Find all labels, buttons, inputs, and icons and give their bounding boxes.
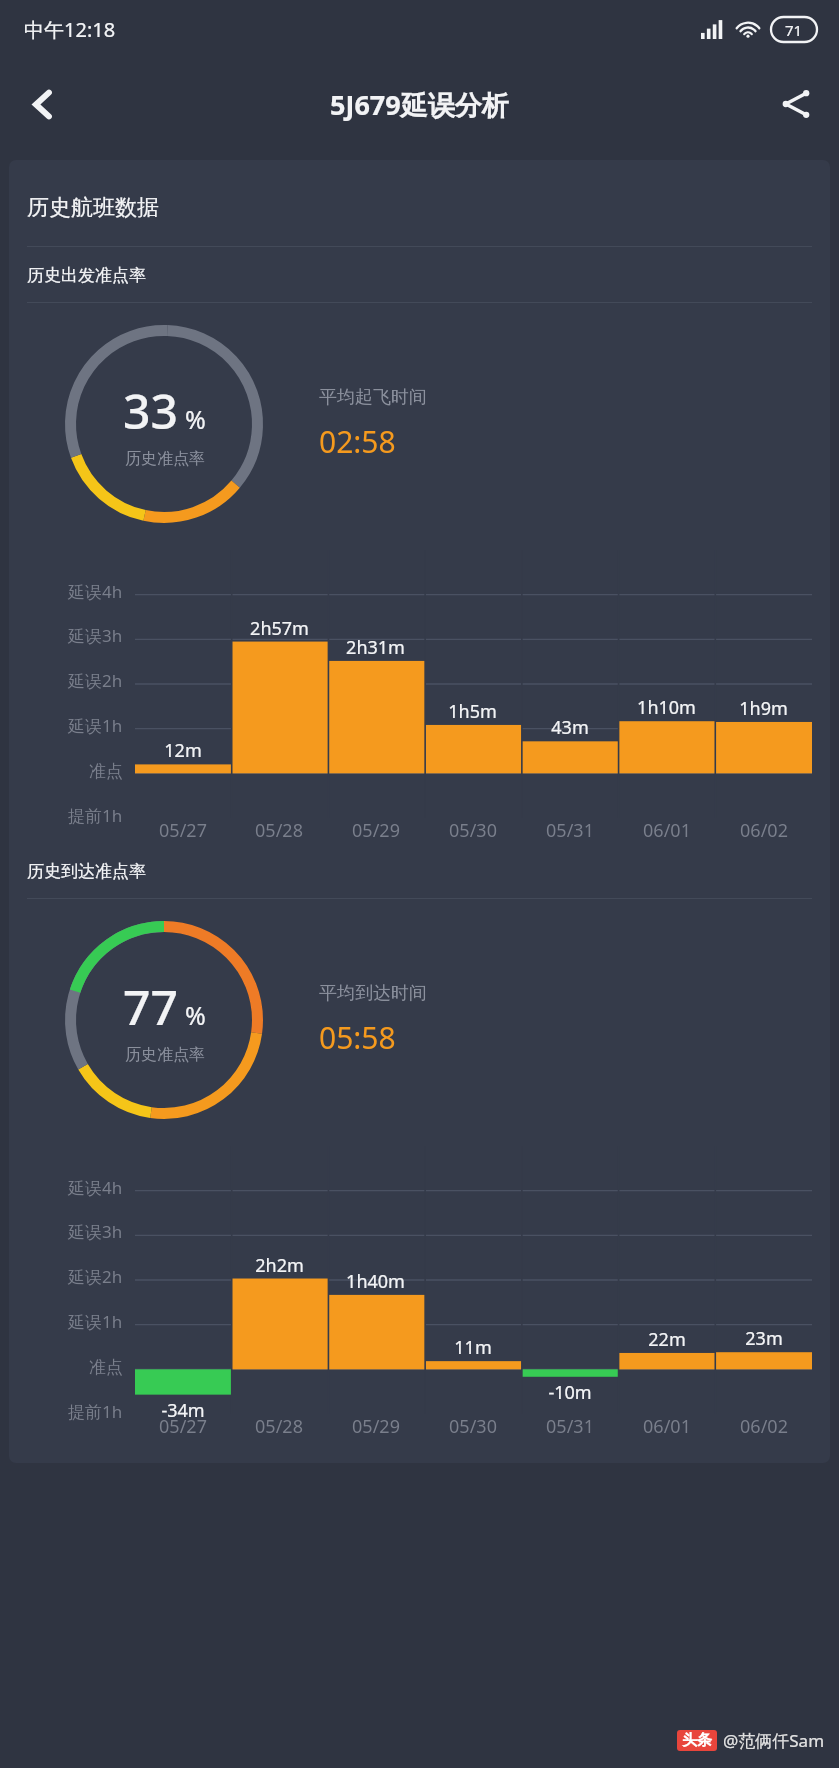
staticText: 1h9m [739, 696, 788, 721]
staticText: 延误1h [68, 714, 123, 737]
staticText: 77 [123, 974, 178, 1039]
staticText: 1h40m [346, 1269, 405, 1294]
staticText: 43m [551, 715, 589, 740]
staticText: 71 [785, 20, 803, 40]
staticText: 延误3h [68, 624, 123, 647]
staticText: 延误3h [68, 1220, 123, 1243]
staticText: 延误4h [68, 580, 123, 603]
staticText: 05/29 [352, 1414, 400, 1439]
staticText: % [185, 998, 206, 1032]
staticText: 历史准点率 [125, 449, 205, 469]
staticText: 1h10m [637, 695, 696, 720]
button[interactable]: Back [14, 75, 72, 133]
staticText: 05/27 [159, 818, 207, 843]
staticText: 平均到达时间 [319, 982, 427, 1005]
staticText: 02:58 [319, 421, 396, 462]
staticText: 05/27 [159, 1414, 207, 1439]
staticText: 延误2h [68, 1265, 123, 1288]
staticText: 23m [745, 1326, 783, 1351]
staticText: 05/30 [449, 818, 497, 843]
staticText: 1h5m [448, 699, 497, 724]
staticText: 12m [164, 738, 202, 763]
staticText: 05/30 [449, 1414, 497, 1439]
staticText: 延误1h [68, 1310, 123, 1333]
button[interactable]: Share [767, 75, 825, 133]
staticText: 06/01 [643, 818, 691, 843]
staticText: 头条 [682, 1731, 712, 1750]
staticText: 提前1h [68, 804, 123, 827]
staticText: 06/01 [643, 1414, 691, 1439]
staticText: 05/29 [352, 818, 400, 843]
staticText: 2h2m [255, 1253, 304, 1278]
staticText: 延误4h [68, 1176, 123, 1199]
staticText: -34m [161, 1398, 205, 1423]
staticText: 历史航班数据 [27, 194, 159, 222]
staticText: 平均起飞时间 [319, 386, 427, 409]
staticText: 5J679延误分析 [330, 86, 509, 123]
staticText: 05/31 [546, 818, 594, 843]
staticText: @范俩仟Sam [723, 1729, 825, 1752]
staticText: -10m [548, 1380, 592, 1405]
staticText: 准点 [89, 1357, 123, 1378]
staticText: % [185, 402, 206, 436]
staticText: 05/31 [546, 1414, 594, 1439]
staticText: 2h57m [250, 616, 309, 641]
staticText: 准点 [89, 761, 123, 782]
staticText: 05/28 [255, 818, 303, 843]
staticText: 33 [123, 378, 178, 443]
staticText: 历史到达准点率 [27, 861, 146, 882]
staticText: 历史出发准点率 [27, 265, 146, 286]
staticText: 中午12:18 [24, 16, 116, 43]
staticText: 06/02 [740, 818, 788, 843]
staticText: 05/28 [255, 1414, 303, 1439]
staticText: 延误2h [68, 669, 123, 692]
staticText: 06/02 [740, 1414, 788, 1439]
staticText: 11m [454, 1335, 492, 1360]
staticText: 提前1h [68, 1400, 123, 1423]
staticText: 05:58 [319, 1017, 396, 1058]
staticText: 22m [648, 1327, 686, 1352]
staticText: 2h31m [346, 635, 405, 660]
staticText: 历史准点率 [125, 1045, 205, 1065]
